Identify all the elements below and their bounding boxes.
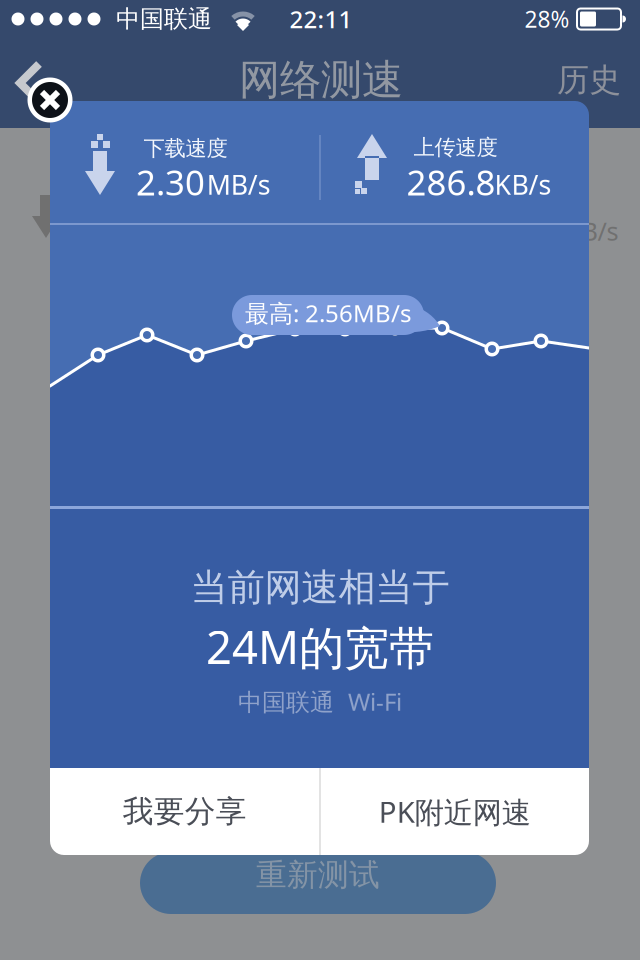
button[interactable]: Close bbox=[27, 77, 72, 122]
button[interactable]: 重新测试 bbox=[140, 852, 496, 914]
staticText: 2.30 bbox=[136, 159, 205, 205]
staticText: 28% bbox=[524, 4, 569, 34]
staticText: 中国联通 Wi-Fi bbox=[238, 686, 402, 717]
staticText: 286.8 bbox=[406, 159, 495, 205]
staticText: KB/s bbox=[565, 214, 618, 248]
staticText: 历史 bbox=[557, 60, 621, 100]
button[interactable]: Back bbox=[14, 59, 46, 107]
staticText: 最高: 2.56MB/s bbox=[245, 297, 411, 329]
staticText: 中国联通 bbox=[116, 4, 212, 34]
staticText: 上传速度 bbox=[413, 134, 497, 161]
staticText: MB/s bbox=[207, 167, 271, 202]
staticText: 我要分享 bbox=[123, 793, 247, 830]
staticText: 重新测试 bbox=[256, 856, 380, 894]
button[interactable]: 历史 bbox=[544, 50, 634, 110]
staticText: PK附近网速 bbox=[379, 792, 531, 831]
staticText: 下载速度 bbox=[143, 135, 227, 162]
staticText: 22:11 bbox=[289, 3, 352, 35]
staticText: 当前网速相当于 bbox=[190, 565, 449, 610]
button[interactable]: 我要分享 bbox=[50, 768, 319, 855]
staticText: KB/s bbox=[494, 167, 551, 202]
staticText: 网络测速 bbox=[239, 55, 403, 105]
button[interactable]: PK附近网速 bbox=[321, 768, 589, 855]
staticText: 24M的宽带 bbox=[206, 616, 434, 677]
